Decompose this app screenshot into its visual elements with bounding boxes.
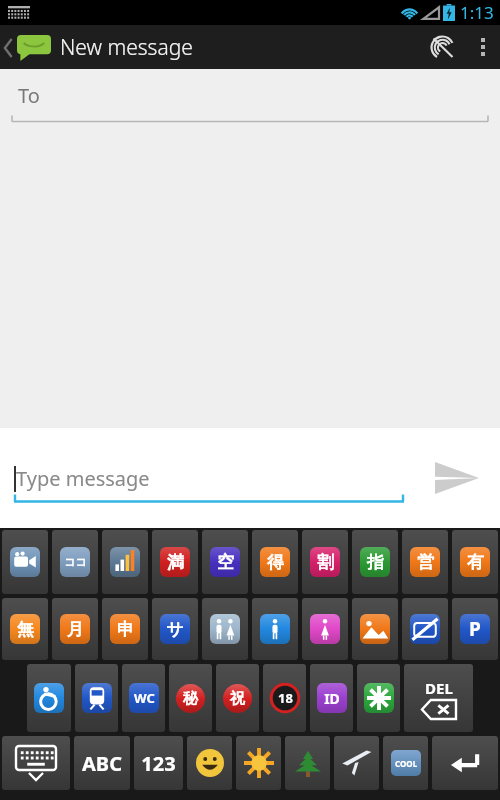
staticText: サ — [166, 619, 184, 640]
button[interactable]: metro — [75, 664, 118, 732]
staticText: 得 — [267, 552, 284, 573]
button[interactable]: hidekb — [2, 736, 70, 790]
button[interactable]: 123 — [134, 736, 183, 790]
button[interactable]: circ18 — [263, 664, 306, 732]
button[interactable]: 得 — [252, 530, 298, 594]
button[interactable]: del — [404, 664, 473, 732]
button[interactable]: sun — [236, 736, 281, 790]
staticText: New message — [60, 33, 193, 62]
staticText: 18 — [278, 689, 293, 707]
button[interactable]: To — [0, 69, 500, 127]
button[interactable]: Type message — [14, 448, 404, 508]
button[interactable]: P — [452, 598, 498, 660]
button[interactable]: picture — [352, 598, 398, 660]
button[interactable]: ID — [310, 664, 353, 732]
button[interactable]: 満 — [152, 530, 198, 594]
button[interactable]: men — [252, 598, 298, 660]
staticText: 満 — [167, 552, 184, 573]
staticText: 有 — [467, 552, 484, 573]
button[interactable]: 申 — [102, 598, 148, 660]
button[interactable]: 空 — [202, 530, 248, 594]
staticText: 秘 — [183, 689, 198, 708]
button[interactable]: ABC — [74, 736, 130, 790]
button[interactable]: 有 — [452, 530, 498, 594]
staticText: 1:13 — [460, 1, 494, 24]
button[interactable]: women — [302, 598, 348, 660]
button[interactable]: 無 — [2, 598, 48, 660]
staticText: 申 — [117, 619, 134, 640]
staticText: WC — [134, 689, 155, 707]
button[interactable]: 月 — [52, 598, 98, 660]
staticText: P — [469, 616, 481, 642]
staticText: 無 — [17, 619, 34, 640]
staticText: 祝 — [230, 689, 245, 708]
staticText: 営 — [417, 552, 434, 573]
staticText: DEL — [425, 678, 453, 698]
button[interactable]: More options — [466, 25, 500, 69]
button[interactable]: wheelchair — [27, 664, 71, 732]
button[interactable]: ココ — [52, 530, 98, 594]
staticText: To — [18, 82, 40, 109]
staticText: ID — [324, 689, 340, 708]
button[interactable]: サ — [152, 598, 198, 660]
button[interactable]: sparkle — [357, 664, 400, 732]
button[interactable]: Attach — [418, 25, 466, 69]
button[interactable]: Navigate up — [0, 29, 199, 66]
button[interactable]: 営 — [402, 530, 448, 594]
staticText: ココ — [64, 555, 87, 569]
staticText: 指 — [367, 552, 384, 573]
button[interactable]: WC — [122, 664, 165, 732]
button[interactable]: cool — [383, 736, 428, 790]
staticText: 123 — [141, 750, 176, 777]
button[interactable]: circ_shuku — [216, 664, 259, 732]
staticText: 割 — [317, 552, 334, 573]
button[interactable]: nophoto — [402, 598, 448, 660]
staticText: ABC — [82, 750, 122, 777]
staticText: 空 — [217, 552, 234, 573]
staticText: Type message — [16, 465, 150, 492]
button[interactable]: wcboth — [202, 598, 248, 660]
button[interactable]: tree — [285, 736, 330, 790]
button[interactable]: 割 — [302, 530, 348, 594]
button[interactable]: bars — [102, 530, 148, 594]
button[interactable]: camcorder — [2, 530, 48, 594]
button[interactable]: 指 — [352, 530, 398, 594]
button[interactable]: circ_hi — [169, 664, 212, 732]
button[interactable]: plane — [334, 736, 379, 790]
staticText: COOL — [395, 758, 418, 769]
button[interactable]: enter — [432, 736, 498, 790]
button[interactable]: grin — [187, 736, 232, 790]
button[interactable]: Send — [426, 447, 488, 509]
staticText: 月 — [67, 619, 84, 640]
